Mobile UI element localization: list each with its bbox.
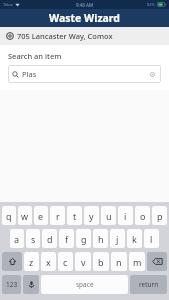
button[interactable]: space [41, 275, 128, 294]
staticText: g [81, 233, 87, 245]
button[interactable]: a [10, 229, 24, 248]
staticText: p [157, 210, 163, 222]
button[interactable]: o [135, 206, 150, 225]
button[interactable]: u [101, 206, 116, 225]
button[interactable]: s [26, 229, 40, 248]
staticText: c [63, 256, 68, 268]
staticText: 123 [6, 280, 18, 289]
button[interactable]: Location [0, 27, 169, 45]
staticText: return [139, 280, 159, 289]
button[interactable]: c [58, 252, 73, 271]
staticText: x [46, 256, 51, 268]
staticText: j [116, 233, 119, 245]
staticText: Search an item [8, 51, 62, 61]
button[interactable]: w [18, 206, 32, 225]
staticText: y [89, 210, 94, 222]
staticText: n [116, 256, 122, 268]
button[interactable]: Shift [2, 252, 22, 271]
button[interactable]: z [24, 252, 39, 271]
button[interactable]: q [2, 206, 16, 225]
button[interactable]: m [129, 252, 145, 271]
button[interactable]: x [41, 252, 56, 271]
button[interactable]: e [34, 206, 48, 225]
staticText: 9:48 AM [76, 2, 94, 8]
staticText: s [31, 233, 36, 245]
button[interactable]: Backspace [147, 252, 167, 271]
staticText: k [132, 233, 137, 245]
staticText: 705 Lancaster Way, Comox [17, 31, 113, 41]
button[interactable]: i [118, 206, 133, 225]
staticText: h [98, 233, 104, 245]
button[interactable]: t [67, 206, 82, 225]
staticText: o [140, 210, 146, 222]
button[interactable]: n [111, 252, 127, 271]
staticText: a [14, 233, 20, 245]
staticText: v [81, 256, 86, 268]
staticText: b [98, 256, 104, 268]
button[interactable]: 123 [2, 275, 21, 294]
staticText: 82% [147, 2, 155, 7]
staticText: u [106, 210, 112, 222]
button[interactable]: d [42, 229, 57, 248]
staticText: Plas [22, 69, 37, 79]
button[interactable]: return [130, 275, 167, 294]
staticText: space [76, 280, 94, 289]
button[interactable]: Dictate [23, 275, 39, 294]
staticText: w [21, 210, 29, 222]
staticText: q [6, 210, 12, 222]
button[interactable]: l [144, 229, 159, 248]
staticText: l [150, 233, 153, 245]
staticText: f [65, 233, 69, 245]
button[interactable]: y [84, 206, 99, 225]
button[interactable]: j [110, 229, 125, 248]
button[interactable]: b [93, 252, 109, 271]
staticText: i [124, 210, 127, 222]
button[interactable]: h [93, 229, 108, 248]
button[interactable]: g [76, 229, 91, 248]
button[interactable]: Search [8, 65, 161, 83]
staticText: d [47, 233, 53, 245]
other: Search [12, 71, 19, 78]
staticText: t [73, 210, 77, 222]
button[interactable]: p [152, 206, 167, 225]
button[interactable]: k [127, 229, 142, 248]
button[interactable]: f [59, 229, 74, 248]
button[interactable]: v [75, 252, 91, 271]
staticText: z [29, 256, 34, 268]
other: Location [6, 32, 14, 40]
button[interactable]: Clear text [147, 69, 157, 79]
staticText: Waste Wizard [49, 11, 120, 25]
staticText: e [38, 210, 44, 222]
staticText: m [133, 256, 142, 268]
staticText: Telus [3, 2, 13, 7]
button[interactable]: r [50, 206, 65, 225]
staticText: r [56, 210, 60, 222]
